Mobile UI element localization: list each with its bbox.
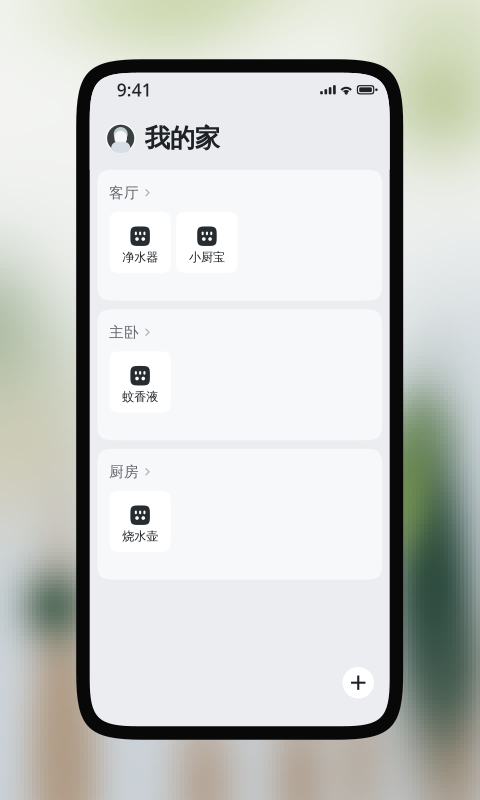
staticText: 烧水壶 — [122, 529, 158, 544]
staticText: 小厨宝 — [189, 250, 225, 265]
button[interactable]: 小厨宝 — [176, 212, 238, 273]
staticText: 客厅 — [109, 184, 139, 202]
button[interactable]: Profile — [106, 123, 136, 153]
staticText: 我的家 — [145, 123, 220, 154]
staticText: 9:41 — [117, 78, 152, 101]
staticText: 蚊香液 — [122, 389, 158, 404]
staticText: 主卧 — [109, 323, 139, 341]
button[interactable]: 净水器 — [109, 212, 171, 273]
button[interactable]: Add device — [342, 667, 374, 698]
button[interactable]: 蚊香液 — [109, 351, 171, 413]
button[interactable]: 烧水壶 — [109, 491, 171, 552]
button[interactable]: 厨房 — [97, 449, 382, 491]
staticText: 厨房 — [109, 463, 139, 481]
staticText: 净水器 — [122, 250, 158, 265]
button[interactable]: 客厅 — [97, 170, 382, 212]
button[interactable]: 主卧 — [97, 309, 382, 351]
